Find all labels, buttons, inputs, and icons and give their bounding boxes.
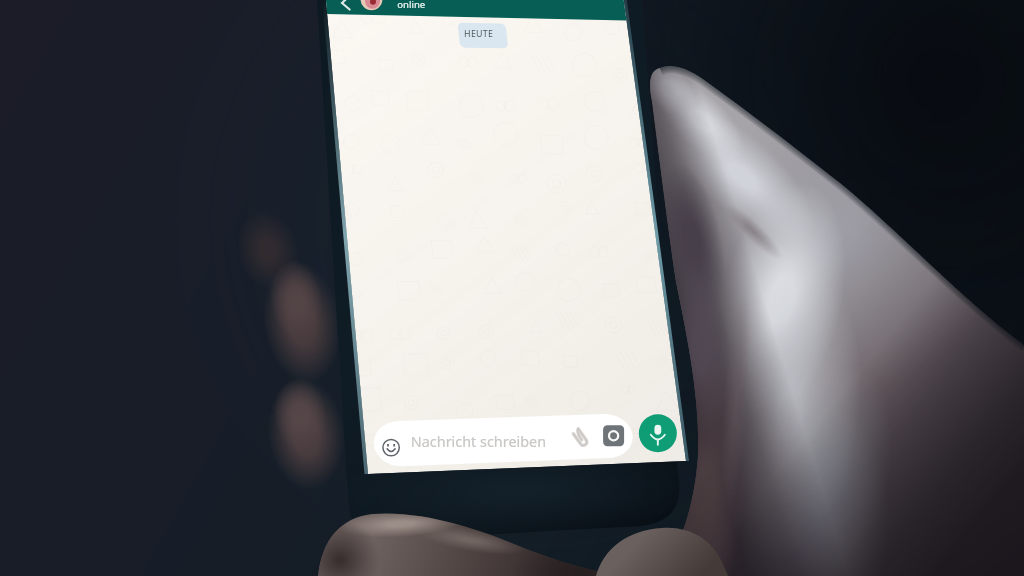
button[interactable]: Attach file bbox=[564, 424, 594, 456]
button[interactable]: Contact, online bbox=[392, 0, 512, 16]
button[interactable]: Voice message bbox=[638, 416, 678, 456]
button[interactable]: Contact avatar bbox=[358, 0, 388, 14]
button[interactable]: Back bbox=[336, 0, 364, 16]
button[interactable]: Nachricht schreiben bbox=[374, 422, 632, 464]
button[interactable]: Emoji bbox=[378, 430, 406, 460]
button[interactable]: Camera bbox=[598, 422, 628, 454]
